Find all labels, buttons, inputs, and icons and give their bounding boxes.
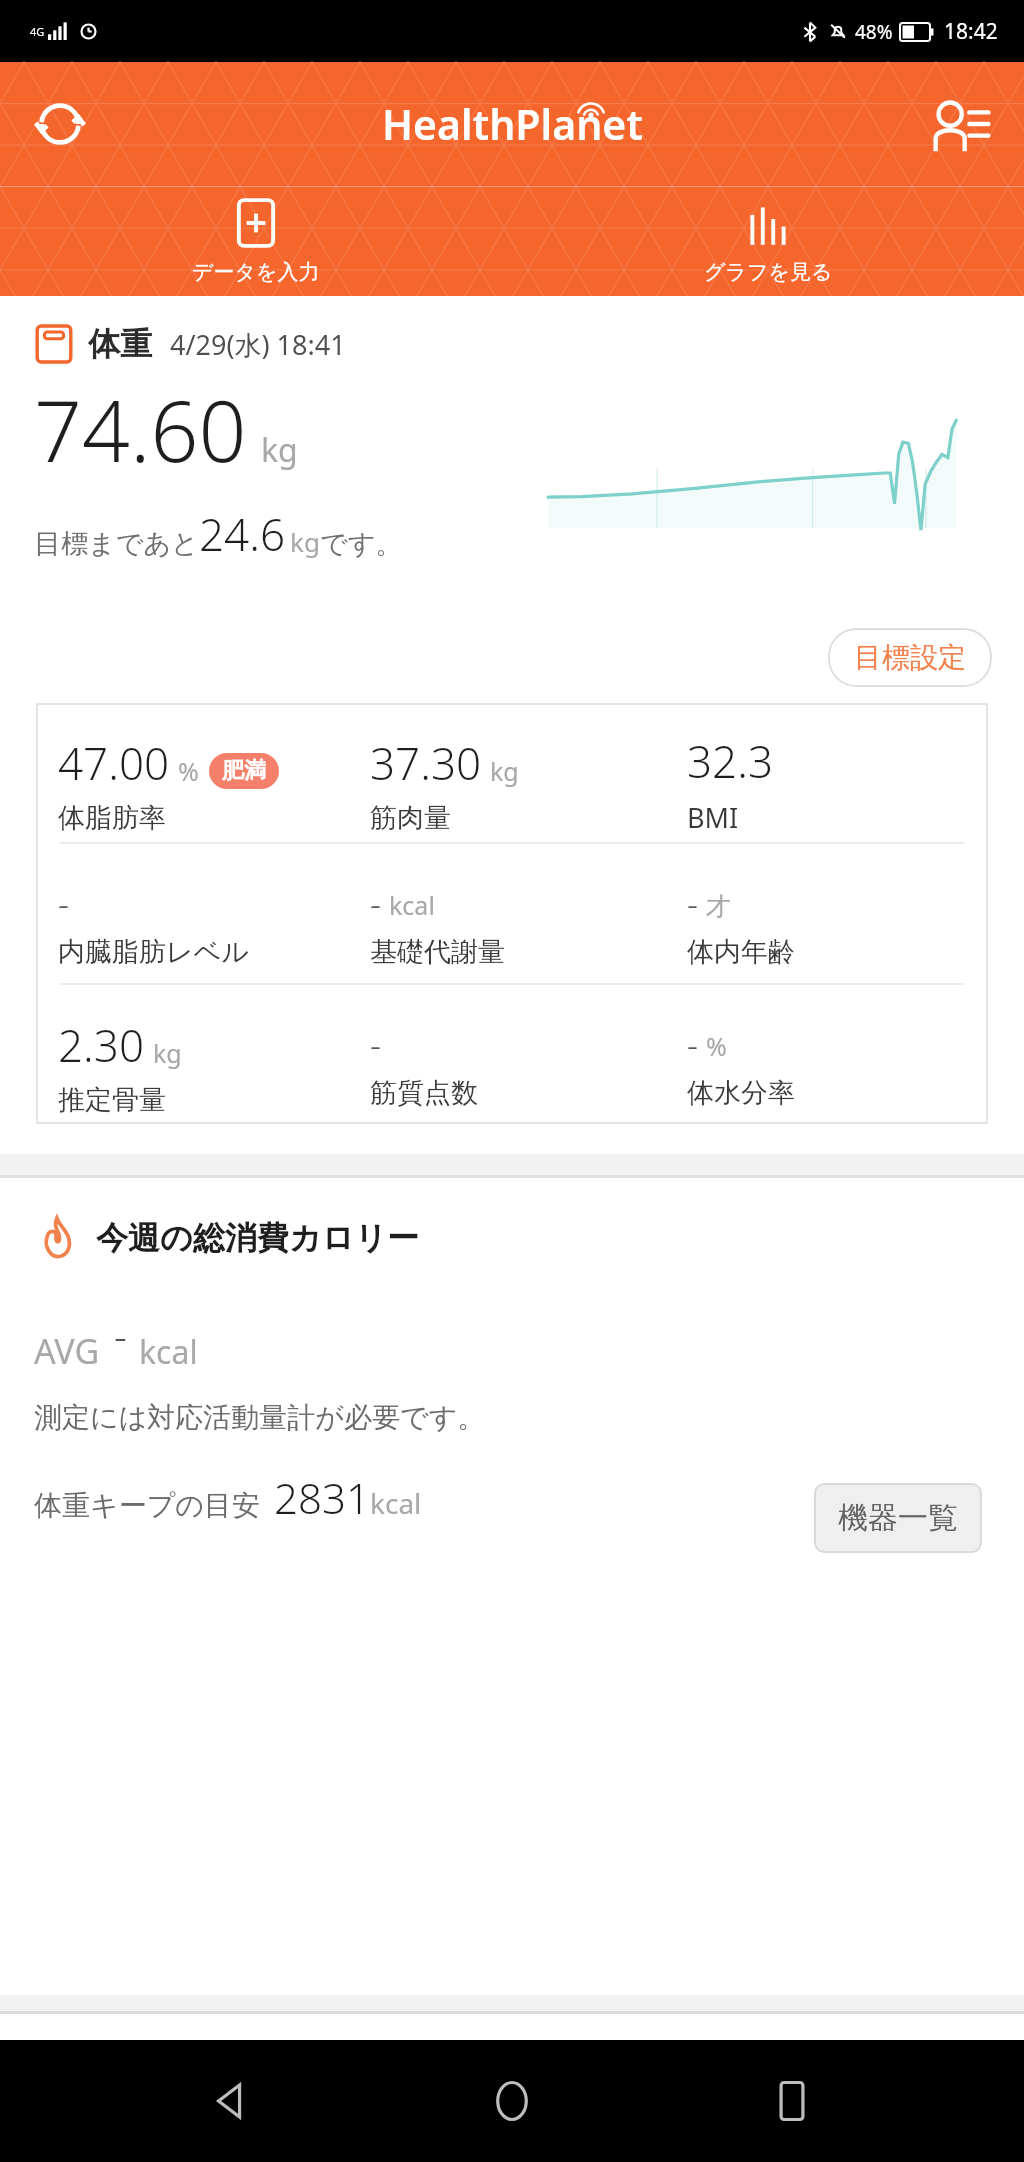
button[interactable]: - bbox=[354, 844, 671, 983]
staticText: 基礎代謝量 bbox=[370, 935, 505, 969]
staticText: 筋質点数 bbox=[370, 1076, 478, 1110]
staticText: - bbox=[370, 1022, 381, 1068]
staticText: kg bbox=[290, 524, 320, 559]
staticText: 2831 bbox=[274, 1469, 370, 1526]
staticText: 32.3 bbox=[687, 731, 774, 791]
button[interactable]: Home bbox=[464, 2053, 560, 2149]
staticText: kcal bbox=[370, 1484, 422, 1522]
staticText: 体重キープの目安 bbox=[34, 1488, 260, 1523]
staticText: 37.30 bbox=[370, 733, 482, 793]
staticText: 内臓脂肪レベル bbox=[58, 935, 249, 969]
staticText: 4G bbox=[30, 24, 45, 39]
button[interactable]: データを入力 bbox=[0, 186, 512, 296]
button[interactable]: - bbox=[671, 985, 988, 1124]
button[interactable]: グラフを見る bbox=[512, 186, 1024, 296]
staticText: - bbox=[687, 881, 698, 927]
staticText: - bbox=[114, 1308, 127, 1362]
staticText: 肥満 bbox=[222, 757, 266, 785]
staticText: - bbox=[687, 1022, 698, 1068]
staticText: 4/29(水) 18:41 bbox=[170, 326, 346, 363]
staticText: kg bbox=[261, 428, 298, 472]
staticText: 目標設定 bbox=[854, 640, 966, 675]
button[interactable]: Sync bbox=[20, 84, 100, 164]
staticText: 推定骨量 bbox=[58, 1083, 166, 1117]
button[interactable]: 目標設定 bbox=[828, 628, 992, 687]
staticText: 目標まであと bbox=[34, 527, 199, 561]
staticText: - bbox=[370, 881, 381, 927]
staticText: - bbox=[58, 881, 69, 927]
staticText: 今週の総消費カロリー bbox=[96, 1218, 419, 1258]
button[interactable]: Recents bbox=[744, 2053, 840, 2149]
button[interactable]: Back bbox=[184, 2053, 280, 2149]
button[interactable]: 37.30 bbox=[354, 703, 671, 842]
button[interactable]: - bbox=[354, 985, 671, 1124]
button[interactable]: 47.00 bbox=[36, 703, 354, 842]
button[interactable]: 2.30 bbox=[36, 985, 354, 1124]
staticText: AVG bbox=[34, 1328, 100, 1374]
button[interactable]: 32.3 bbox=[671, 703, 988, 842]
staticText: グラフを見る bbox=[704, 259, 833, 285]
staticText: kcal bbox=[139, 1330, 198, 1374]
staticText: データを入力 bbox=[192, 259, 320, 285]
staticText: 機器一覧 bbox=[838, 1499, 958, 1537]
staticText: 48% bbox=[855, 19, 893, 45]
staticText: 24.6 bbox=[199, 504, 286, 564]
staticText: 18:42 bbox=[944, 17, 998, 46]
staticText: 体水分率 bbox=[687, 1076, 795, 1110]
staticText: 体脂肪率 bbox=[58, 801, 166, 835]
button[interactable]: - bbox=[671, 844, 988, 983]
staticText: 2.30 bbox=[58, 1015, 145, 1075]
staticText: 才 bbox=[706, 891, 731, 922]
button[interactable]: 機器一覧 bbox=[814, 1483, 982, 1553]
staticText: です。 bbox=[320, 527, 403, 561]
staticText: HealthPlanet bbox=[382, 96, 643, 152]
staticText: 47.00 bbox=[58, 733, 170, 793]
staticText: 74.60 bbox=[34, 372, 247, 486]
staticText: 体内年齢 bbox=[687, 935, 795, 969]
button[interactable]: Account menu bbox=[918, 82, 1002, 166]
staticText: kg bbox=[153, 1036, 182, 1070]
staticText: 測定には対応活動量計が必要です。 bbox=[34, 1400, 486, 1435]
staticText: % bbox=[178, 754, 199, 788]
staticText: BMI bbox=[687, 799, 739, 836]
staticText: 筋肉量 bbox=[370, 801, 451, 835]
staticText: kg bbox=[490, 754, 519, 788]
staticText: kcal bbox=[389, 888, 435, 922]
staticText: % bbox=[706, 1029, 727, 1063]
button[interactable]: - bbox=[36, 844, 354, 983]
staticText: 体重 bbox=[88, 324, 152, 364]
